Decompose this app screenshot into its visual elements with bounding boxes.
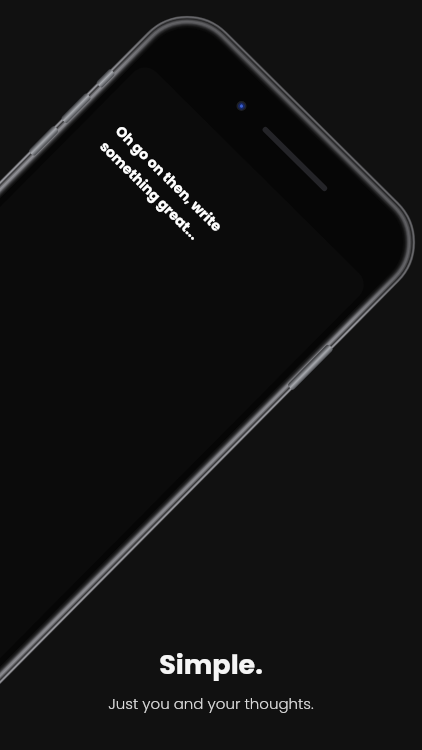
staticText: Simple. — [159, 646, 263, 684]
staticText: Oh go on then, write something great... — [95, 121, 244, 269]
staticText: Just you and your thoughts. — [108, 693, 314, 714]
